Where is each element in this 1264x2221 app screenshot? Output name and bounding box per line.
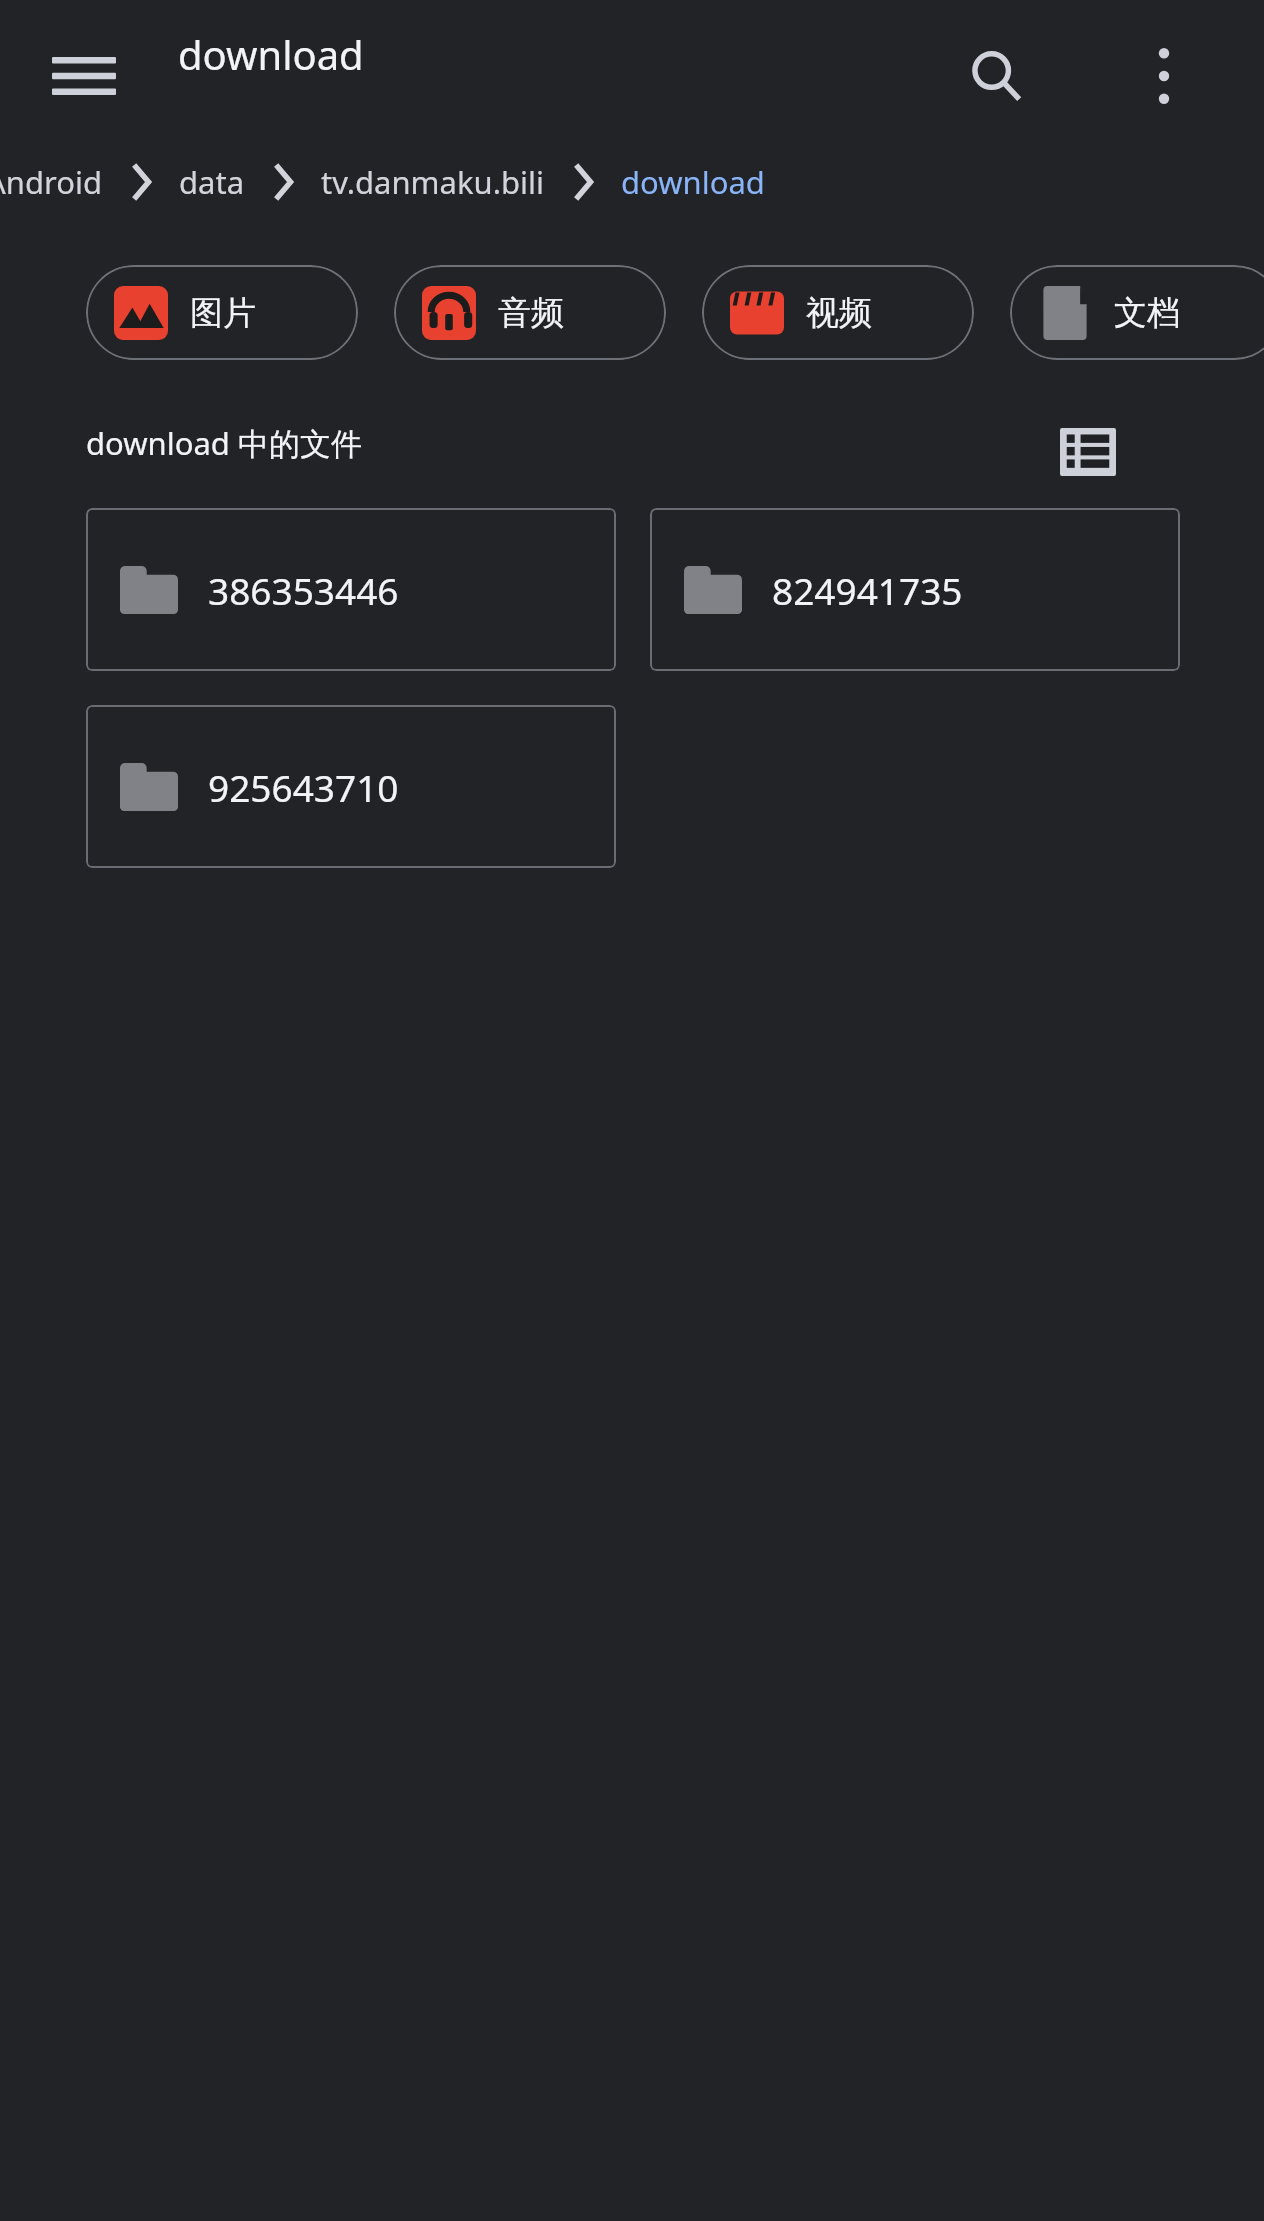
button[interactable]: download [619,161,767,203]
button[interactable]: 图片 [86,265,358,360]
staticText: 824941735 [772,565,963,615]
staticText: 音频 [498,292,564,334]
button[interactable]: Android [0,161,105,203]
button[interactable]: 音频 [394,265,666,360]
button[interactable]: Navigation menu [38,30,130,122]
button[interactable]: data [177,161,247,203]
staticText: download [621,161,765,203]
staticText: 文档 [1114,292,1180,334]
button[interactable]: More options [1116,28,1212,124]
staticText: tv.danmaku.bili [321,161,545,203]
button[interactable]: Switch to list view [1044,408,1132,496]
button[interactable]: 925643710 [86,705,616,868]
staticText: data [179,161,245,203]
button[interactable]: 视频 [702,265,974,360]
button[interactable]: 386353446 [86,508,616,671]
staticText: download 中的文件 [86,422,362,464]
staticText: 图片 [190,292,256,334]
staticText: Android [0,161,103,203]
button[interactable]: 824941735 [650,508,1180,671]
staticText: 386353446 [208,565,399,615]
staticText: 视频 [806,292,872,334]
button[interactable]: tv.danmaku.bili [319,161,547,203]
button[interactable]: Search [948,28,1044,124]
staticText: download [178,27,364,81]
button[interactable]: 文档 [1010,265,1264,360]
staticText: 925643710 [208,762,399,812]
